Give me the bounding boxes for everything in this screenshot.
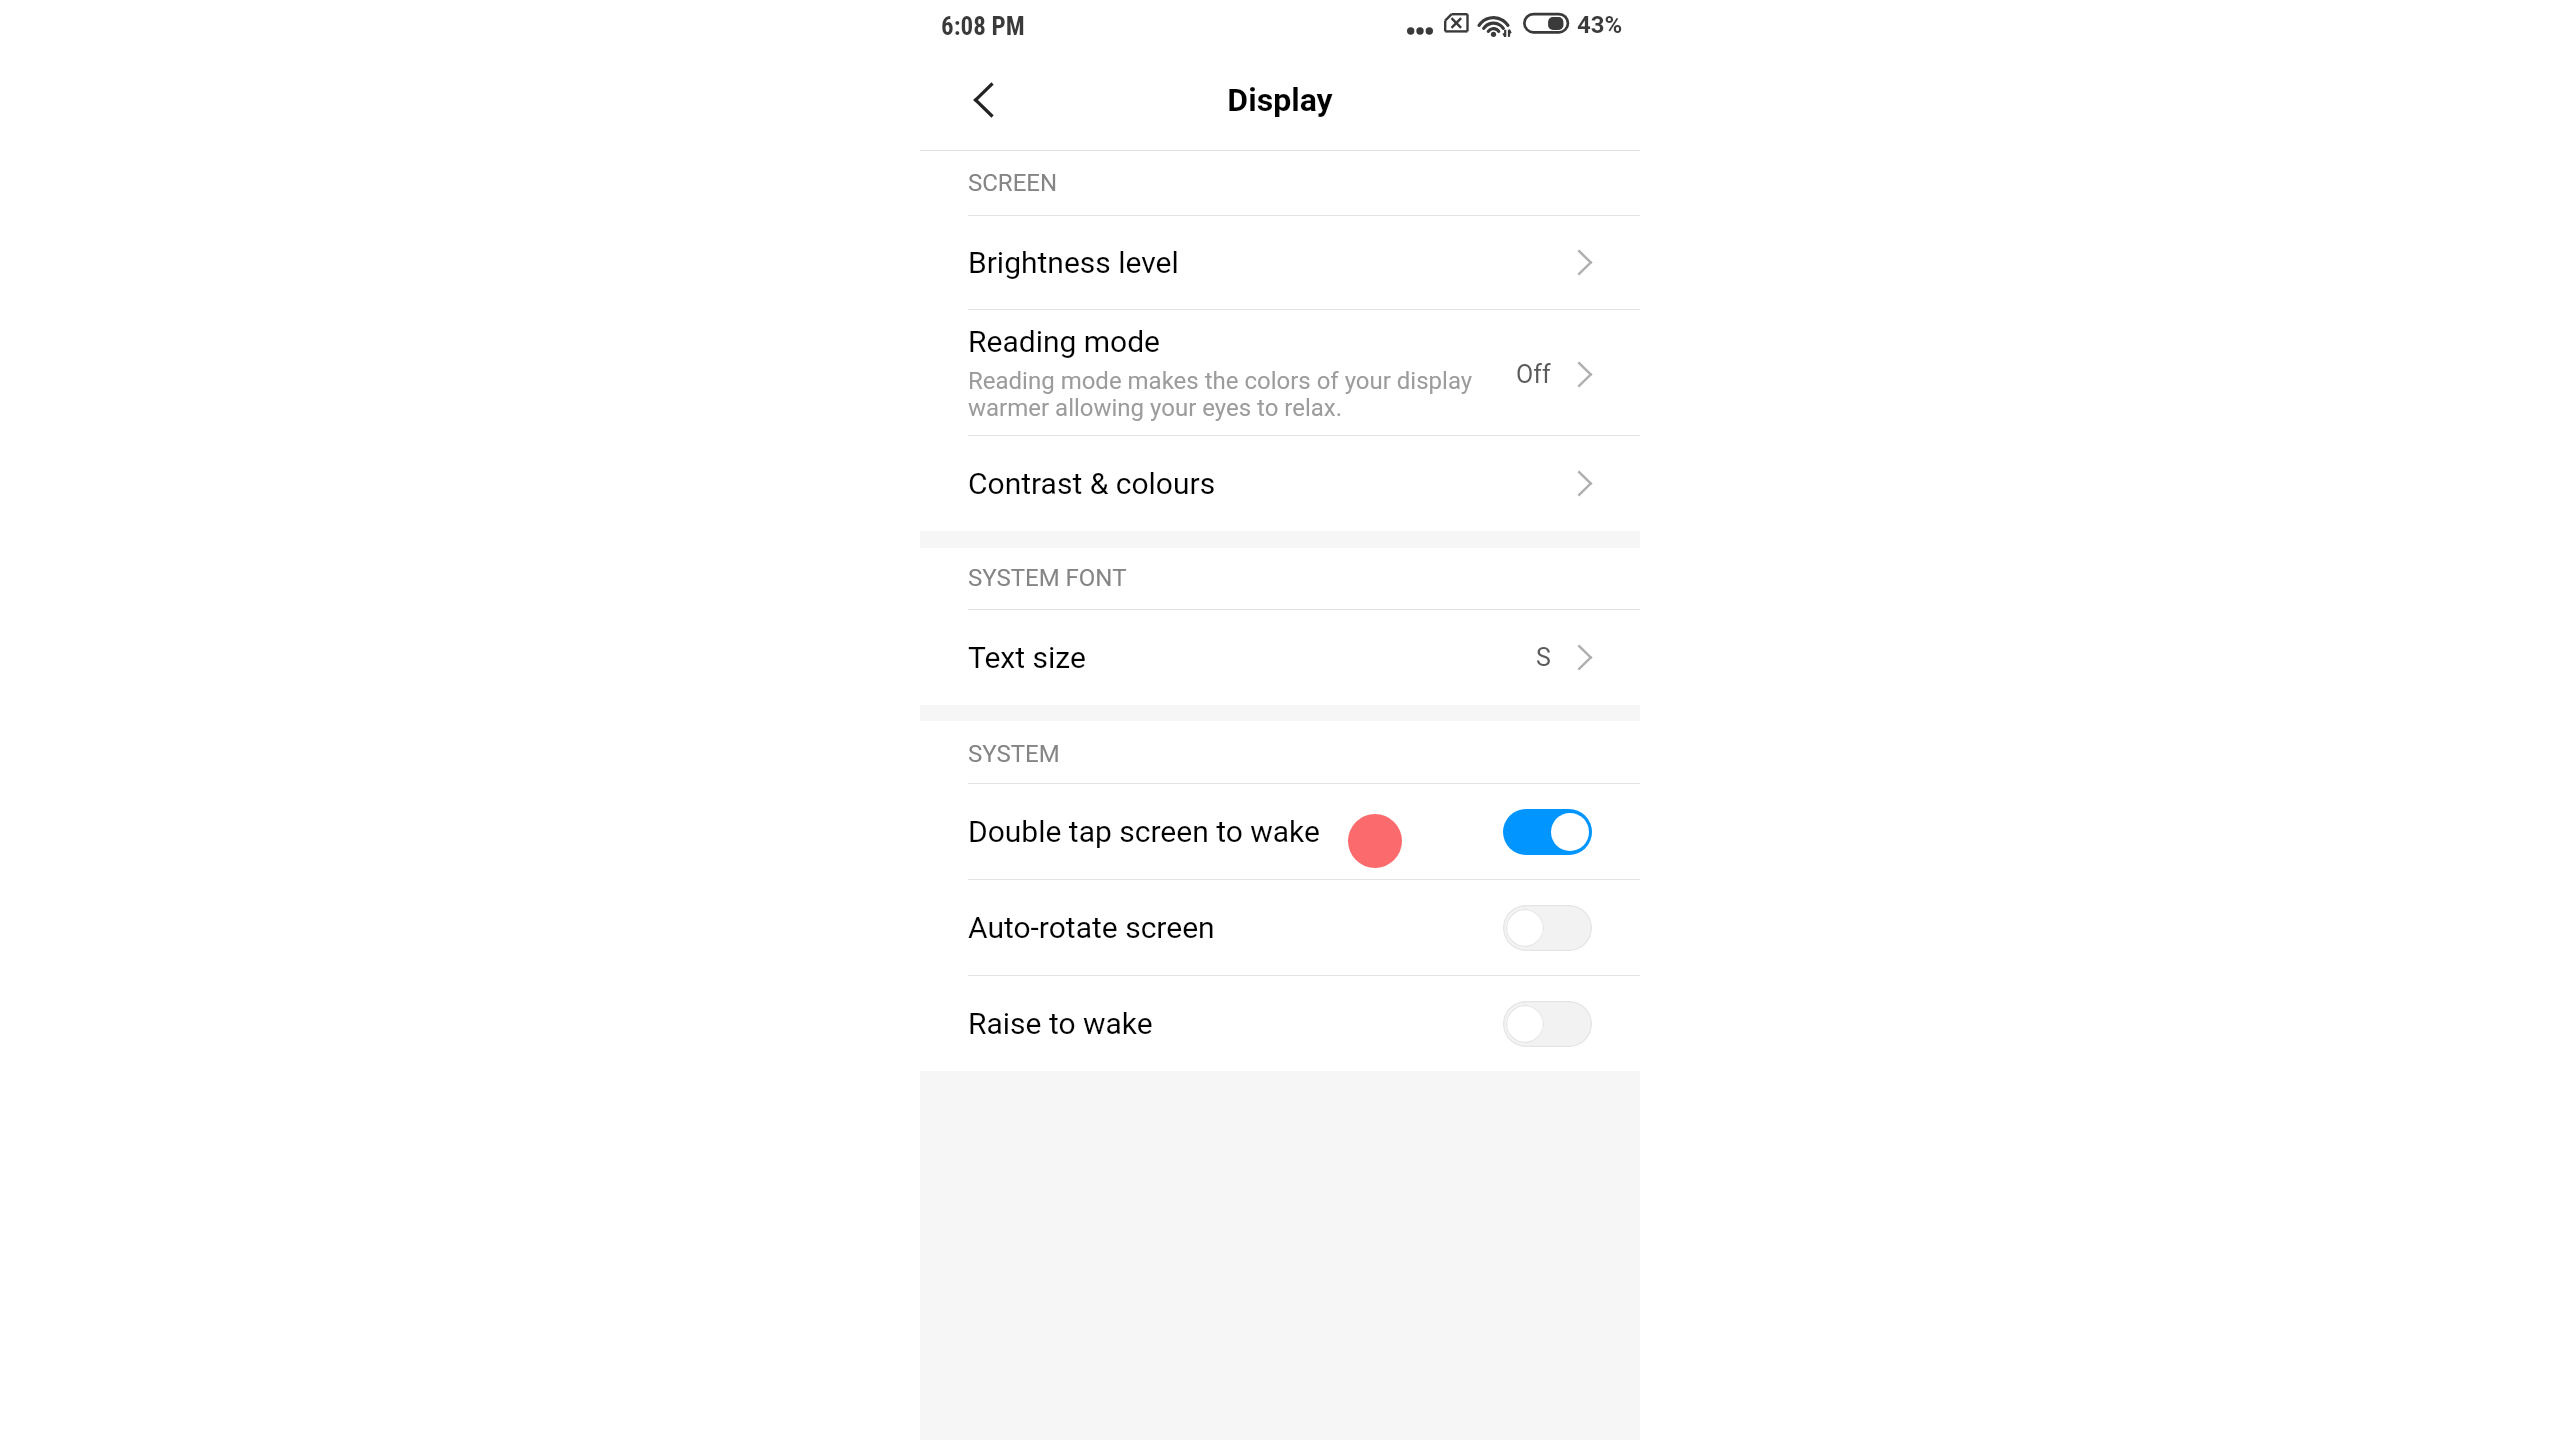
staticText: SYSTEM xyxy=(968,740,1060,768)
button[interactable]: Back xyxy=(920,50,1030,150)
button[interactable]: Contrast & colours xyxy=(920,436,1640,531)
staticText: 43% xyxy=(1577,11,1623,39)
staticText: Brightness level xyxy=(968,245,1179,280)
button[interactable]: Double tap screen to wake xyxy=(920,784,1640,879)
staticText: 6:08 PM xyxy=(941,12,1025,41)
button[interactable]: Raise to wake xyxy=(920,976,1640,1071)
staticText: Display xyxy=(1227,81,1333,119)
button[interactable]: Brightness level xyxy=(920,216,1640,309)
button[interactable]: Text size xyxy=(920,610,1640,705)
staticText: Double tap screen to wake xyxy=(968,814,1320,849)
button[interactable]: Auto-rotate screen xyxy=(920,880,1640,975)
staticText: Reading mode xyxy=(968,324,1161,359)
staticText: SCREEN xyxy=(968,169,1058,197)
staticText: Text size xyxy=(968,640,1086,675)
button[interactable]: Reading mode xyxy=(920,310,1640,435)
staticText: Off xyxy=(1516,360,1551,389)
staticText: Contrast & colours xyxy=(968,466,1216,501)
staticText: Reading mode makes the colors of your di… xyxy=(968,367,1488,422)
staticText: Auto-rotate screen xyxy=(968,910,1215,945)
staticText: SYSTEM FONT xyxy=(968,564,1127,592)
staticText: Raise to wake xyxy=(968,1006,1153,1041)
staticText: S xyxy=(1536,643,1551,672)
